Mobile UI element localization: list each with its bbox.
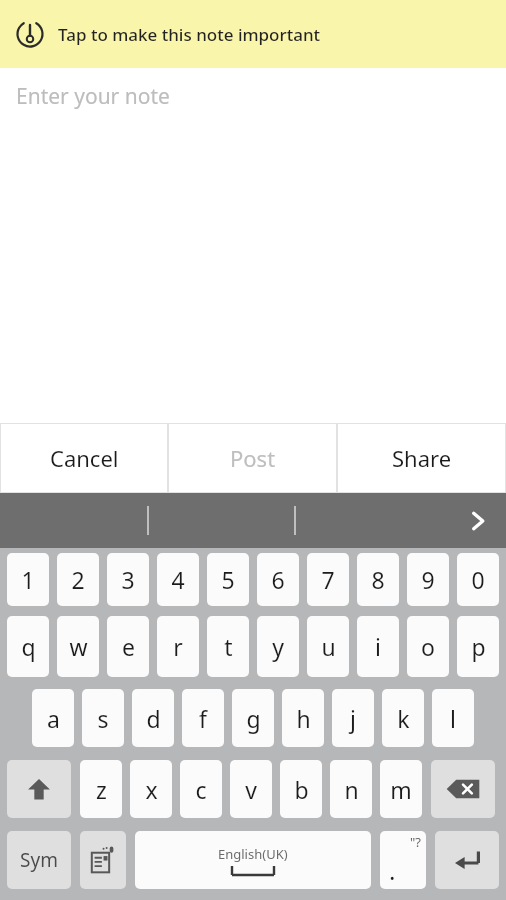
- button[interactable]: k: [382, 689, 424, 747]
- button[interactable]: e: [107, 616, 149, 677]
- button[interactable]: i: [357, 616, 399, 677]
- button[interactable]: Sym: [7, 831, 71, 889]
- staticText: q: [21, 631, 36, 662]
- staticText: 7: [321, 564, 335, 595]
- staticText: l: [450, 703, 456, 734]
- staticText: s: [97, 703, 109, 734]
- staticText: i: [375, 631, 381, 662]
- staticText: d: [146, 703, 161, 734]
- staticText: a: [47, 703, 60, 734]
- staticText: y: [272, 631, 284, 662]
- staticText: 8: [371, 564, 385, 595]
- staticText: Post: [230, 443, 276, 473]
- staticText: v: [245, 774, 257, 805]
- staticText: m: [390, 774, 412, 805]
- button[interactable]: Backspace: [431, 760, 495, 818]
- staticText: 4: [171, 564, 185, 595]
- button[interactable]: l: [432, 689, 474, 747]
- button[interactable]: t: [207, 616, 249, 677]
- staticText: Cancel: [50, 443, 119, 473]
- staticText: g: [246, 703, 261, 734]
- staticText: r: [173, 631, 183, 662]
- button[interactable]: Shift: [7, 760, 71, 818]
- staticText: w: [69, 631, 88, 662]
- button[interactable]: p: [457, 616, 499, 677]
- button[interactable]: 8: [357, 553, 399, 606]
- button[interactable]: q: [7, 616, 49, 677]
- staticText: Sym: [20, 847, 58, 873]
- staticText: 1: [21, 564, 35, 595]
- button[interactable]: v: [230, 760, 272, 818]
- staticText: .: [389, 854, 396, 887]
- staticText: o: [421, 631, 435, 662]
- button[interactable]: 0: [457, 553, 499, 606]
- button[interactable]: c: [180, 760, 222, 818]
- button[interactable]: o: [407, 616, 449, 677]
- staticText: 0: [471, 564, 485, 595]
- button[interactable]: n: [330, 760, 372, 818]
- staticText: j: [350, 703, 356, 734]
- staticText: e: [122, 631, 135, 662]
- button[interactable]: h: [282, 689, 324, 747]
- button[interactable]: b: [280, 760, 322, 818]
- button[interactable]: Enter: [435, 831, 499, 889]
- button[interactable]: Cancel: [1, 424, 167, 492]
- staticText: t: [224, 631, 233, 662]
- staticText: Share: [392, 443, 452, 473]
- staticText: Tap to make this note important: [58, 23, 321, 46]
- button[interactable]: m: [380, 760, 422, 818]
- button[interactable]: u: [307, 616, 349, 677]
- other: Mark important: [16, 20, 44, 48]
- staticText: n: [344, 774, 359, 805]
- button[interactable]: Expand suggestions: [450, 493, 506, 548]
- button[interactable]: 5: [207, 553, 249, 606]
- staticText: p: [471, 631, 486, 662]
- staticText: b: [294, 774, 309, 805]
- staticText: 9: [421, 564, 435, 595]
- button[interactable]: x: [130, 760, 172, 818]
- button[interactable]: s: [82, 689, 124, 747]
- button[interactable]: a: [32, 689, 74, 747]
- button[interactable]: w: [57, 616, 99, 677]
- button[interactable]: f: [182, 689, 224, 747]
- button[interactable]: d: [132, 689, 174, 747]
- staticText: Enter your note: [16, 82, 170, 111]
- staticText: 6: [271, 564, 285, 595]
- button[interactable]: 4: [157, 553, 199, 606]
- button[interactable]: j: [332, 689, 374, 747]
- button[interactable]: "?: [380, 831, 426, 889]
- staticText: 5: [221, 564, 235, 595]
- button[interactable]: 3: [107, 553, 149, 606]
- staticText: x: [145, 774, 158, 805]
- button[interactable]: g: [232, 689, 274, 747]
- button[interactable]: 7: [307, 553, 349, 606]
- button[interactable]: Share: [338, 424, 505, 492]
- button[interactable]: z: [80, 760, 122, 818]
- staticText: u: [321, 631, 336, 662]
- button[interactable]: 1: [7, 553, 49, 606]
- staticText: k: [397, 703, 410, 734]
- staticText: f: [199, 703, 207, 734]
- staticText: h: [296, 703, 311, 734]
- staticText: 3: [121, 564, 135, 595]
- button[interactable]: Enter your note: [0, 68, 506, 423]
- staticText: z: [96, 774, 107, 805]
- staticText: c: [195, 774, 207, 805]
- button[interactable]: 2: [57, 553, 99, 606]
- button[interactable]: 6: [257, 553, 299, 606]
- staticText: "?: [410, 833, 421, 851]
- button[interactable]: Mark important: [0, 0, 506, 68]
- staticText: 2: [71, 564, 85, 595]
- button[interactable]: Post: [169, 424, 336, 492]
- button[interactable]: r: [157, 616, 199, 677]
- button[interactable]: y: [257, 616, 299, 677]
- button[interactable]: English(UK): [135, 831, 371, 889]
- button[interactable]: Clipboard and voice input: [80, 831, 126, 889]
- staticText: English(UK): [218, 845, 288, 863]
- button[interactable]: 9: [407, 553, 449, 606]
